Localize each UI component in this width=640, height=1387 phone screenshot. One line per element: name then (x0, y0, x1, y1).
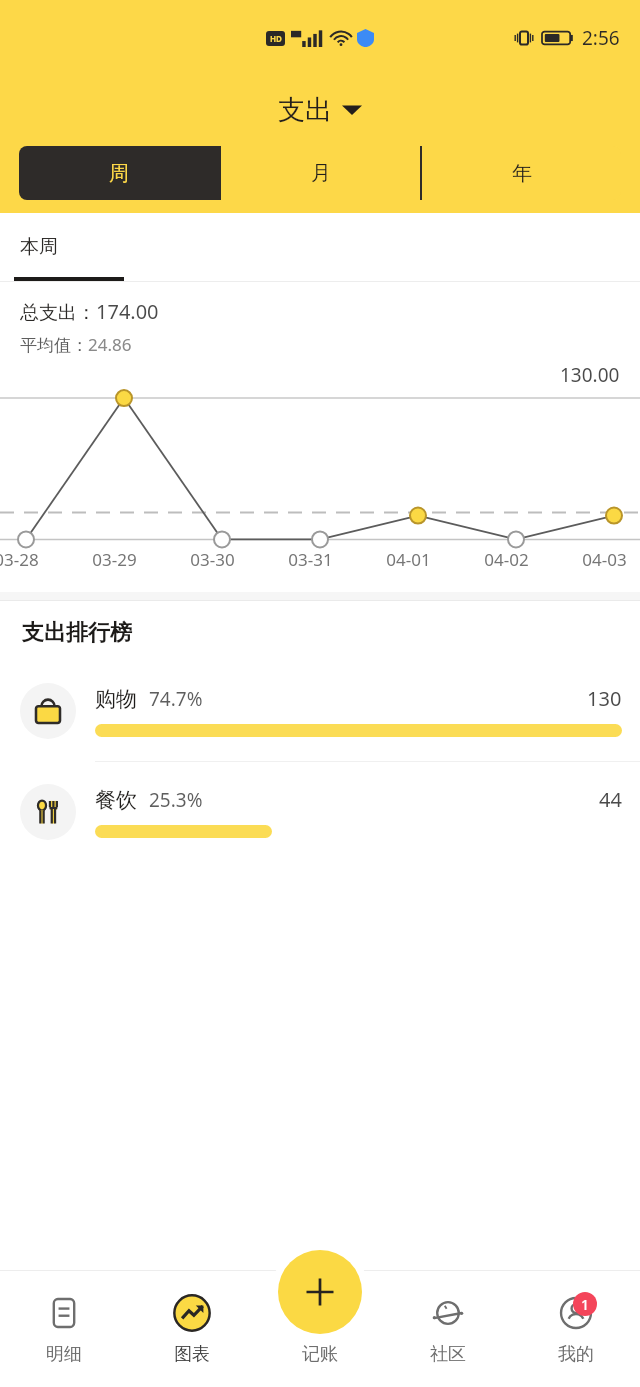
staticText: 餐饮 (95, 787, 137, 813)
staticText: 130 (587, 685, 622, 712)
button[interactable]: 餐饮 (0, 762, 640, 862)
staticText: 25.3% (149, 787, 203, 813)
staticText: 明细 (46, 1343, 82, 1366)
staticText: 图表 (174, 1343, 210, 1366)
staticText: 月 (311, 161, 331, 186)
button[interactable]: 记账 Add record (278, 1250, 362, 1334)
staticText: 支出排行榜 (22, 619, 132, 647)
staticText: 社区 (430, 1343, 466, 1366)
button[interactable]: 记账 (256, 1270, 384, 1387)
staticText: 年 (512, 161, 532, 186)
staticText: 2:56 (582, 25, 620, 51)
staticText: 04-01 (386, 548, 431, 571)
other: 明细 (47, 1296, 81, 1330)
button[interactable]: 图表 (128, 1270, 256, 1387)
staticText: 03-30 (190, 548, 235, 571)
other: 社区 (430, 1295, 466, 1331)
button[interactable]: 本周 (20, 213, 640, 281)
button[interactable]: 年 (422, 146, 621, 200)
button[interactable]: 支出 (0, 88, 640, 132)
button[interactable]: 购物 (0, 661, 640, 761)
staticText: 本周 (20, 235, 58, 259)
staticText: 记账 (302, 1343, 338, 1366)
staticText: 1 (581, 1295, 590, 1314)
staticText: 周 (109, 161, 129, 186)
button[interactable]: 我的 (512, 1270, 640, 1387)
other: 我的 (559, 1296, 593, 1330)
staticText: 支出 (278, 93, 332, 127)
staticText: 44 (599, 786, 622, 813)
staticText: 04-03 (582, 548, 627, 571)
staticText: 购物 (95, 686, 137, 712)
staticText: 130.00 (560, 362, 620, 388)
staticText: 04-02 (484, 548, 529, 571)
button[interactable]: 明细 (0, 1270, 128, 1387)
button[interactable]: 月 (221, 146, 420, 200)
staticText: 03-29 (92, 548, 137, 571)
staticText: 174.00 (96, 298, 159, 325)
staticText: 24.86 (88, 333, 132, 356)
staticText: 平均值： (20, 335, 88, 356)
staticText: 74.7% (149, 686, 203, 712)
staticText: 我的 (558, 1343, 594, 1366)
staticText: HD (270, 33, 282, 44)
staticText: 总支出： (20, 301, 96, 325)
button[interactable]: 社区 (384, 1270, 512, 1387)
other: 图表 (173, 1294, 211, 1332)
staticText: 03-28 (0, 548, 39, 571)
button[interactable]: 周 (19, 146, 219, 200)
staticText: 03-31 (288, 548, 333, 571)
